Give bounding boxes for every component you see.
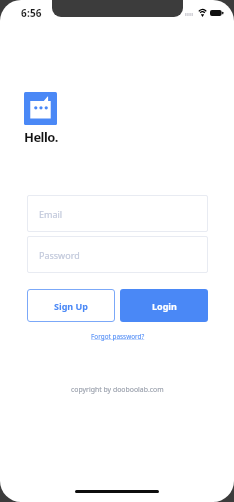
staticText: Login (152, 300, 177, 312)
staticText: Password (39, 249, 80, 261)
staticText: copyright by dooboolab.com (71, 385, 164, 394)
staticText: 6:56 (21, 6, 42, 20)
button[interactable]: Email (27, 195, 208, 232)
button[interactable]: Password (27, 236, 208, 273)
staticText: Sign Up (54, 300, 89, 312)
staticText: Email (39, 208, 63, 220)
button[interactable]: Login (120, 289, 208, 322)
staticText: Hello. (24, 128, 58, 146)
button[interactable]: Sign Up (27, 289, 115, 322)
button[interactable]: Forgot password? (88, 330, 148, 343)
staticText: Forgot password? (91, 332, 145, 341)
